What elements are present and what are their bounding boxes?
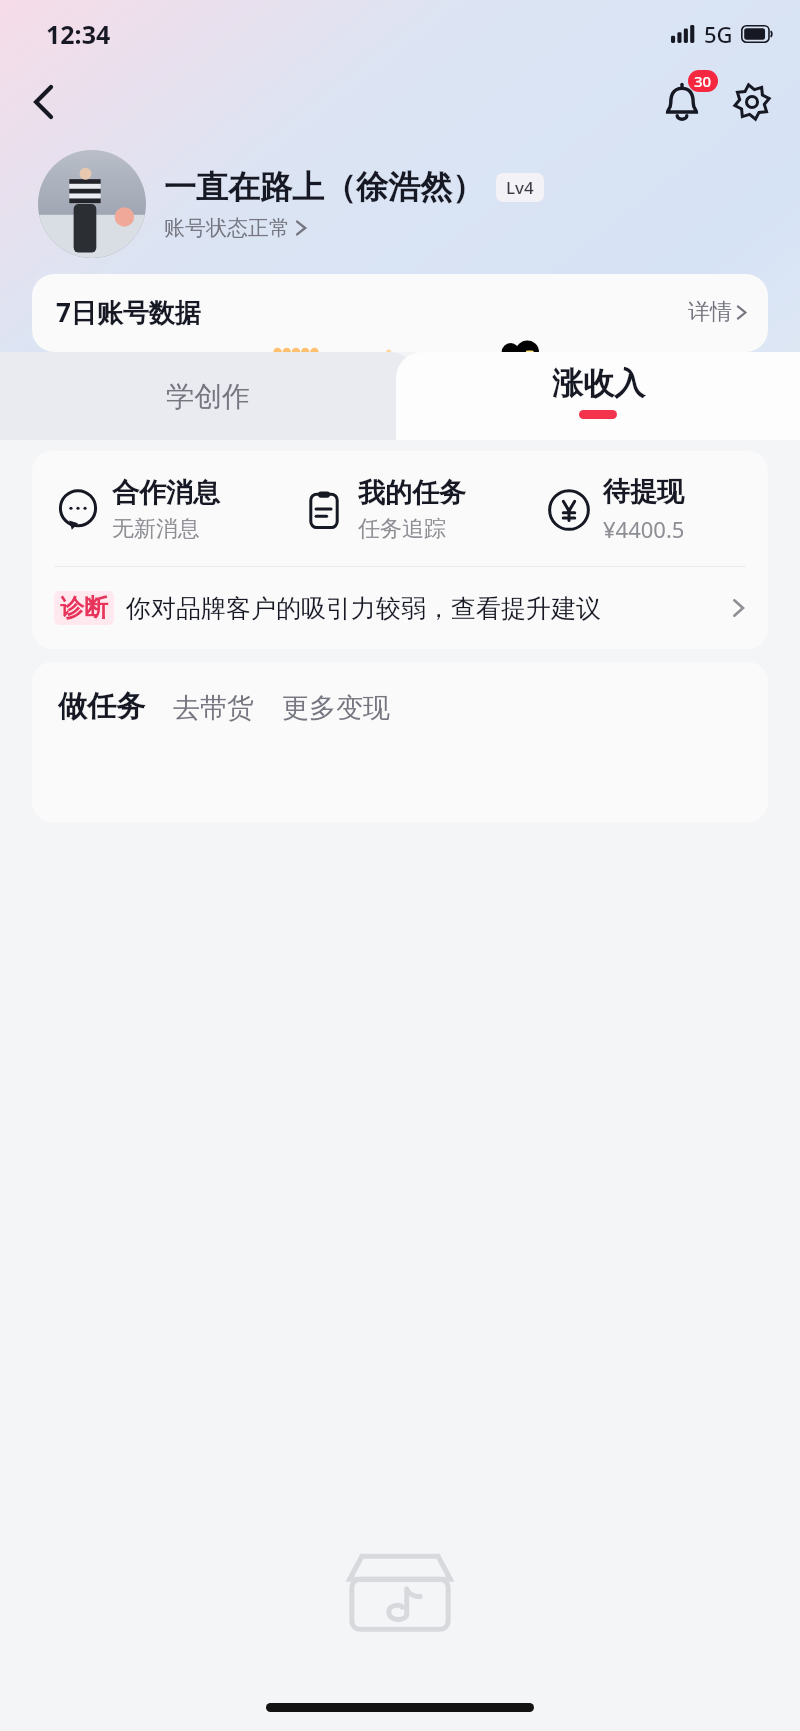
button[interactable]: 7日账号数据 [32, 274, 768, 352]
button[interactable]: 学创作 [0, 352, 416, 440]
button[interactable]: 涨收入 [396, 352, 800, 440]
button[interactable]: Lv4 [496, 173, 544, 202]
button[interactable]: 更多变现 [282, 691, 390, 725]
staticText: 详情 [688, 298, 732, 326]
button[interactable]: Settings [726, 76, 778, 128]
staticText: Lv4 [506, 176, 534, 199]
button[interactable]: 详情 [688, 298, 748, 326]
staticText: 30 [694, 71, 712, 91]
staticText: 我的任务 [358, 476, 466, 510]
button[interactable]: 合作消息 [32, 476, 278, 543]
staticText: 合作消息 [112, 476, 220, 510]
button[interactable]: 去带货 [173, 691, 254, 725]
staticText: 涨收入 [552, 364, 645, 403]
staticText: 学创作 [166, 379, 250, 414]
staticText: 一直在路上（徐浩然） [164, 167, 484, 207]
staticText: 无新消息 [112, 515, 200, 543]
button[interactable]: 做任务 [58, 688, 145, 725]
button[interactable]: Notifications [654, 74, 710, 130]
staticText: 7日账号数据 [56, 294, 201, 330]
staticText: 待提现 [603, 475, 684, 509]
staticText: 5G [704, 19, 733, 49]
staticText: 任务追踪 [358, 515, 446, 543]
staticText: 12:34 [46, 17, 111, 51]
button[interactable]: 待提现 [523, 475, 768, 544]
staticText: ¥4400.5 [603, 514, 685, 544]
button[interactable]: 账号状态正常 [164, 215, 308, 241]
button[interactable]: 诊断 [32, 567, 768, 649]
staticText: 诊断 [60, 593, 108, 623]
button[interactable] [38, 150, 146, 258]
button[interactable]: 我的任务 [278, 476, 523, 543]
staticText: 账号状态正常 [164, 215, 290, 241]
button[interactable]: Back [18, 76, 70, 128]
staticText: 你对品牌客户的吸引力较弱，查看提升建议 [126, 593, 601, 624]
